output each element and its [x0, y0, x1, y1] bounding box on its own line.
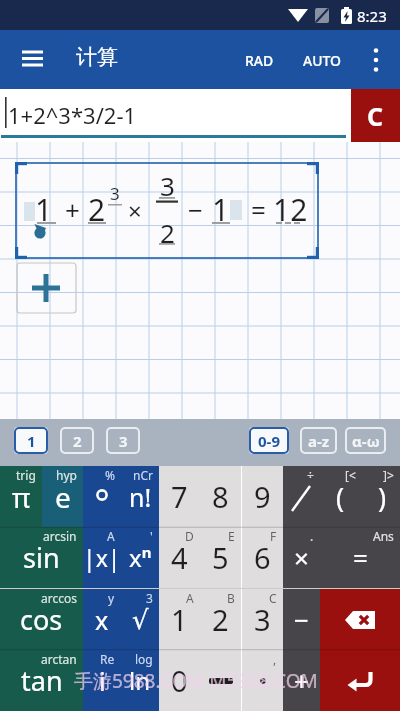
staticText: +: [294, 663, 309, 698]
staticText: arccos: [41, 590, 77, 606]
staticText: +: [65, 192, 80, 227]
staticText: 5: [212, 538, 229, 577]
staticText: A: [186, 590, 194, 606]
staticText: 9: [254, 477, 271, 516]
staticText: arctan: [41, 651, 77, 667]
button[interactable]: Re: [83, 650, 121, 711]
staticText: ×: [294, 540, 309, 575]
button[interactable]: a-z: [300, 427, 337, 454]
staticText: ln: [129, 664, 151, 697]
button[interactable]: y: [83, 589, 121, 650]
staticText: 6: [254, 538, 271, 577]
staticText: [<: [345, 467, 356, 483]
staticText: =: [353, 540, 368, 575]
staticText: .: [310, 528, 314, 544]
button[interactable]: 0-9: [249, 427, 289, 454]
button[interactable]: .: [283, 527, 320, 588]
staticText: sin: [23, 539, 60, 576]
staticText: RAD: [245, 51, 274, 70]
button[interactable]: A: [83, 527, 121, 588]
staticText: xn: [129, 541, 152, 574]
button[interactable]: 9: [242, 466, 283, 527]
staticText: 1+2^3*3/2-1: [8, 100, 137, 130]
button[interactable]: [360, 41, 392, 79]
staticText: D: [185, 528, 194, 544]
button[interactable]: 7: [159, 466, 200, 527]
staticText: AUTO: [303, 51, 342, 70]
button[interactable]: arccos: [0, 589, 83, 650]
staticText: i: [99, 663, 106, 698]
button[interactable]: [10, 41, 54, 79]
staticText: 1: [171, 600, 188, 639]
button[interactable]: AUTO: [292, 41, 352, 79]
staticText: 3: [110, 182, 120, 205]
staticText: 4: [171, 538, 188, 577]
button[interactable]: C: [242, 589, 283, 650]
staticText: −: [294, 602, 309, 637]
button[interactable]: arcsin: [0, 527, 83, 588]
staticText: |x|: [83, 542, 121, 573]
staticText: B: [227, 590, 235, 606]
staticText: 3: [146, 590, 153, 606]
button[interactable]: F: [242, 527, 283, 588]
button[interactable]: −: [283, 589, 320, 650]
button[interactable]: D: [159, 527, 200, 588]
button[interactable]: C: [351, 89, 400, 142]
staticText: π: [12, 478, 31, 516]
staticText: 0-9: [258, 431, 280, 451]
staticText: 8: [212, 477, 229, 516]
staticText: √: [132, 605, 149, 635]
staticText: F: [270, 528, 277, 544]
button[interactable]: 0: [159, 650, 200, 711]
button[interactable]: [<: [320, 466, 400, 527]
button[interactable]: RAD: [232, 41, 286, 79]
staticText: 0: [171, 661, 188, 700]
staticText: 3: [119, 431, 128, 451]
button[interactable]: 2: [60, 427, 94, 454]
button[interactable]: B: [200, 589, 241, 650]
button[interactable]: arctan: [0, 650, 83, 711]
button[interactable]: ÷: [283, 466, 320, 527]
staticText: Re: [100, 651, 115, 667]
staticText: 计算: [76, 44, 118, 70]
staticText: =: [251, 192, 266, 227]
staticText: C: [367, 99, 384, 133]
staticText: a-z: [308, 431, 330, 451]
button[interactable]: %: [83, 466, 121, 527]
button[interactable]: 3: [121, 589, 159, 650]
button[interactable]: hyp: [42, 466, 83, 527]
staticText: %: [105, 467, 115, 483]
staticText: Ans: [373, 528, 394, 544]
staticText: −: [188, 192, 203, 227]
button[interactable]: nCr: [121, 466, 159, 527]
button[interactable]: E: [200, 527, 241, 588]
staticText: (: [336, 479, 345, 516]
staticText: tan: [21, 662, 63, 699]
button[interactable]: Ans: [320, 527, 400, 588]
staticText: C: [269, 590, 277, 606]
button[interactable]: [320, 589, 400, 650]
button[interactable]: α-ω: [345, 427, 386, 454]
staticText: ': [150, 528, 153, 544]
staticText: log: [135, 651, 153, 667]
button[interactable]: [200, 650, 241, 711]
button[interactable]: 1: [14, 427, 48, 454]
staticText: n!: [129, 480, 152, 514]
button[interactable]: ,: [242, 650, 283, 711]
staticText: 2: [88, 189, 106, 230]
button[interactable]: A: [159, 589, 200, 650]
button[interactable]: +: [283, 650, 320, 711]
staticText: arcsin: [43, 528, 77, 544]
staticText: ]>: [383, 467, 394, 483]
button[interactable]: 3: [106, 427, 140, 454]
staticText: trig: [16, 467, 36, 483]
button[interactable]: ': [121, 527, 159, 588]
button[interactable]: trig: [0, 466, 42, 527]
staticText: ): [378, 479, 387, 516]
button[interactable]: log: [121, 650, 159, 711]
button[interactable]: 8: [200, 466, 241, 527]
staticText: 手游5988.COM M5988.COM: [74, 668, 318, 694]
staticText: 2: [212, 600, 229, 639]
button[interactable]: [320, 650, 400, 711]
staticText: cos: [20, 601, 63, 638]
